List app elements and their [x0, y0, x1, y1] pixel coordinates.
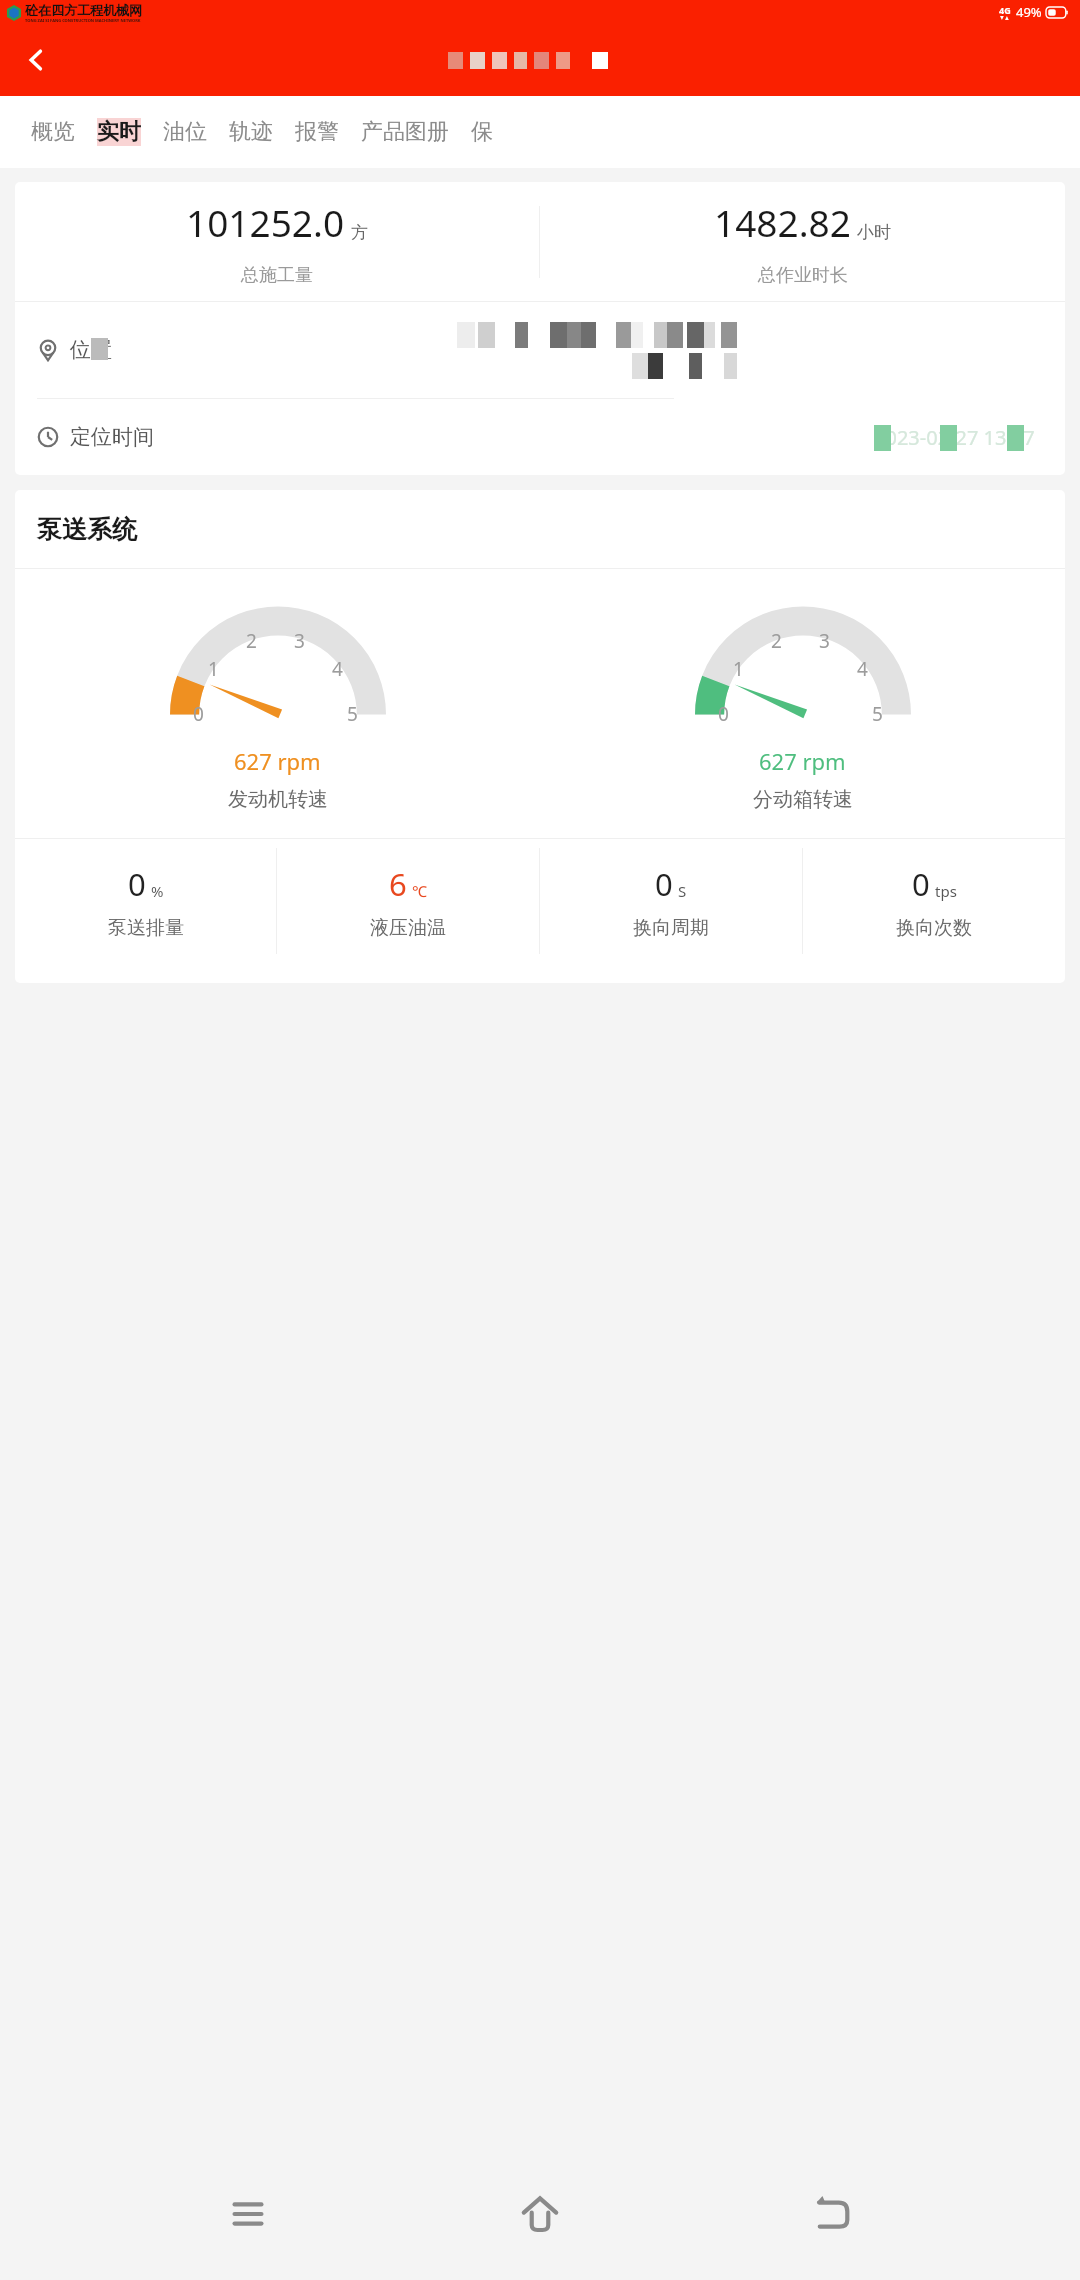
- staticText: 627 rpm: [234, 746, 321, 776]
- staticText: 0: [718, 701, 729, 727]
- staticText: 0: [912, 863, 930, 905]
- staticText: 油位: [163, 118, 207, 146]
- staticText: 6: [389, 863, 407, 905]
- staticText: 4G: [999, 4, 1011, 16]
- staticText: 5: [347, 701, 358, 727]
- button[interactable]: Home: [496, 2170, 584, 2258]
- staticText: 1: [733, 656, 744, 682]
- staticText: 627 rpm: [759, 746, 846, 776]
- staticText: 保: [471, 118, 493, 146]
- button[interactable]: Back: [8, 32, 64, 88]
- staticText: TONG ZAI SI FANG CONSTRUCTION MACHINERY …: [25, 18, 141, 23]
- staticText: 位置: [70, 337, 112, 363]
- button[interactable]: 报警: [295, 118, 339, 146]
- staticText: 液压油温: [370, 916, 446, 940]
- button[interactable]: 产品图册: [361, 118, 449, 146]
- staticText: 砼在四方工程机械网: [25, 2, 142, 18]
- button[interactable]: Back: [788, 2170, 876, 2258]
- staticText: tps: [935, 881, 957, 901]
- staticText: 换向周期: [633, 916, 709, 940]
- staticText: 总施工量: [241, 264, 313, 287]
- button[interactable]: 保: [471, 118, 493, 146]
- staticText: 0: [128, 863, 146, 905]
- staticText: 实时: [97, 118, 141, 146]
- button[interactable]: 油位: [163, 118, 207, 146]
- staticText: %: [151, 881, 164, 901]
- button[interactable]: 轨迹: [229, 118, 273, 146]
- staticText: 定位时间: [70, 424, 154, 450]
- staticText: 2023-02-27 13:07: [874, 424, 1035, 451]
- staticText: 轨迹: [229, 118, 273, 146]
- button[interactable]: 实时: [97, 118, 141, 146]
- staticText: 0: [655, 863, 673, 905]
- staticText: 总作业时长: [758, 264, 848, 287]
- staticText: 3: [819, 628, 830, 654]
- staticText: 发动机转速: [228, 787, 328, 812]
- staticText: 3: [294, 628, 305, 654]
- button[interactable]: 概览: [31, 118, 75, 146]
- button[interactable]: Recent apps: [204, 2170, 292, 2258]
- staticText: ℃: [412, 881, 427, 901]
- staticText: 0: [193, 701, 204, 727]
- staticText: 4: [857, 656, 868, 682]
- staticText: 泵送排量: [108, 916, 184, 940]
- staticText: 2: [771, 628, 782, 654]
- staticText: 1482.82: [714, 197, 851, 247]
- staticText: 101252.0: [186, 197, 345, 247]
- staticText: 小时: [857, 222, 891, 243]
- staticText: 分动箱转速: [753, 787, 853, 812]
- staticText: 产品图册: [361, 118, 449, 146]
- staticText: 5: [872, 701, 883, 727]
- staticText: 1: [208, 656, 219, 682]
- staticText: 报警: [295, 118, 339, 146]
- staticText: 49%: [1016, 3, 1042, 21]
- staticText: 方: [351, 222, 368, 243]
- staticText: S: [678, 881, 687, 901]
- button[interactable]: 101252.0: [15, 182, 1065, 475]
- staticText: 2: [246, 628, 257, 654]
- staticText: 概览: [31, 118, 75, 146]
- staticText: 泵送系统: [37, 514, 137, 545]
- staticText: 换向次数: [896, 916, 972, 940]
- staticText: 4: [332, 656, 343, 682]
